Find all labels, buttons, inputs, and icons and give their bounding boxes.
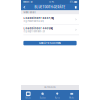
staticText: Mehr — [69, 97, 74, 99]
staticText: GERÄTE SUCHEN — [39, 42, 61, 44]
staticText: ctg-Degrtrebnfdkm-281 — [23, 30, 45, 33]
staticText: Loadbinder 8847/kg — [23, 16, 54, 19]
button[interactable]: Suchen — [35, 90, 50, 100]
button[interactable]: Loadbinder 4401/kg — [21, 25, 79, 35]
button[interactable]: Loadbinder 8847/kg — [21, 14, 79, 24]
button[interactable]: Karte — [50, 90, 64, 100]
staticText: Meine Geräte — [23, 11, 35, 14]
staticText: ANTENNEN — [44, 86, 56, 89]
button[interactable]: GERÄTE SUCHEN — [23, 41, 77, 45]
staticText: ctg-FhusEfharma-Mq — [23, 20, 43, 22]
staticText: Suchen — [40, 97, 46, 99]
button[interactable]: Geräte — [21, 90, 35, 100]
staticText: 13:45 — [49, 1, 54, 3]
button[interactable]: Mehr — [64, 90, 79, 100]
staticText: Geräte — [25, 97, 31, 99]
staticText: BLUETOOTH-GERÄTE — [34, 5, 65, 9]
button[interactable]: Zurück — [21, 4, 27, 10]
staticText: Loadbinder 4401/kg — [23, 27, 53, 30]
button[interactable]: Start — [72, 4, 79, 10]
staticText: 87% — [70, 1, 74, 3]
staticText: Telekom.de — [23, 1, 33, 3]
staticText: Karte — [55, 97, 60, 99]
